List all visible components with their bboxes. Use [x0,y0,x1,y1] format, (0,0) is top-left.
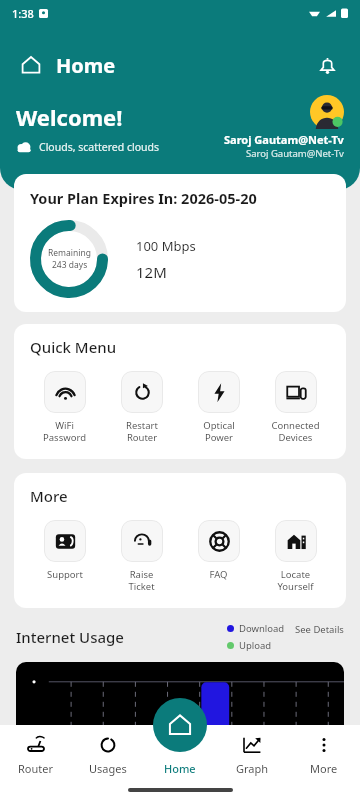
button[interactable]: Optical Power [180,369,257,446]
staticText: Remaining [48,247,91,259]
staticText: Welcome! [16,102,123,132]
staticText: Restart Router [126,419,158,444]
staticText: 12M [136,262,167,282]
staticText: 100 Mbps [136,237,196,255]
staticText: Home [164,761,196,776]
staticText: Upload [239,639,272,652]
button[interactable]: Home [16,50,46,80]
staticText: Your Plan Expires In: 2026-05-20 [30,188,257,208]
button[interactable]: See Details [295,622,344,636]
button[interactable]: Profile [310,95,344,129]
button[interactable]: More [288,733,360,778]
staticText: Support [47,568,83,581]
staticText: Raise Ticket [128,568,155,593]
staticText: Usages [89,761,127,776]
staticText: Quick Menu [30,337,117,357]
staticText: More [30,486,68,506]
button[interactable]: WiFi Password [26,369,103,446]
staticText: Optical Power [203,419,235,444]
staticText: Home [56,52,116,79]
staticText: FAQ [209,568,228,581]
staticText: Internet Usage [16,627,124,647]
button[interactable]: Restart Router [103,369,180,446]
button[interactable]: Home [153,698,207,752]
staticText: More [310,761,338,776]
staticText: Clouds, scattered clouds [39,140,159,154]
staticText: Locate Yourself [277,568,314,593]
staticText: Graph [236,761,269,776]
button[interactable]: Router [0,733,72,778]
button[interactable]: Locate Yourself [257,518,334,595]
button[interactable]: Your Plan Expires In: 2026-05-20 [14,174,346,312]
staticText: Download [239,622,285,635]
staticText: 243 days [52,259,88,271]
button[interactable]: Support [26,518,103,583]
staticText: Connected Devices [271,419,320,444]
staticText: Router [18,761,54,776]
button[interactable]: FAQ [180,518,257,583]
staticText: See Details [295,623,344,636]
staticText: Saroj Gautam@Net-Tv [246,147,344,160]
button[interactable]: Raise Ticket [103,518,180,595]
button[interactable]: Notifications [310,48,344,82]
staticText: WiFi Password [43,419,86,444]
staticText: Saroj Gautam@Net-Tv [224,132,344,147]
button[interactable]: Graph [216,733,288,778]
staticText: 1:38 [12,6,34,21]
button[interactable]: Usages [72,733,144,778]
button[interactable]: Connected Devices [257,369,334,446]
